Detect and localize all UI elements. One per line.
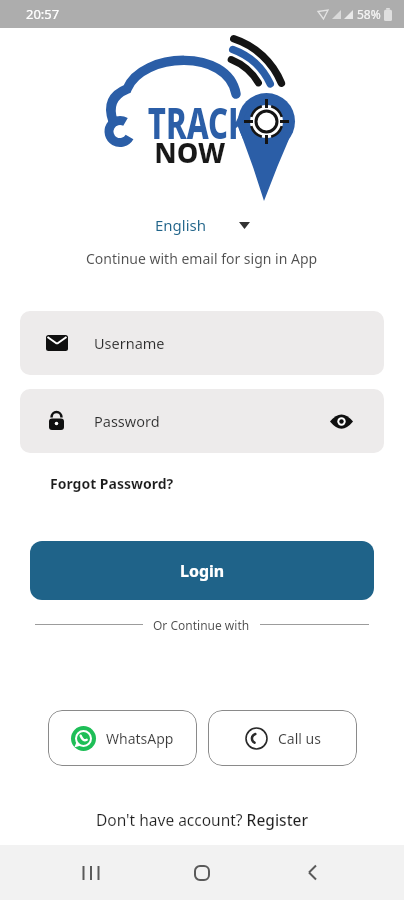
staticText: Call us [278, 729, 321, 748]
button[interactable]: Don't have account? Register [96, 809, 309, 830]
staticText: Password [94, 411, 160, 431]
button[interactable] [257, 845, 368, 900]
staticText: 20:57 [26, 5, 60, 23]
button[interactable] [146, 845, 257, 900]
button[interactable]: Password [20, 389, 384, 453]
staticText: Continue with email for sign in App [86, 249, 318, 268]
staticText: Or Continue with [153, 617, 250, 631]
button[interactable]: Forgot Password? [50, 474, 174, 493]
button[interactable]: Login [30, 541, 374, 600]
button[interactable]: Username [20, 311, 384, 375]
staticText: WhatsApp [106, 729, 174, 748]
staticText: NOW [154, 132, 226, 171]
staticText: English [155, 215, 207, 235]
staticText: TRACK [148, 94, 249, 151]
button[interactable] [36, 845, 146, 900]
button[interactable] [321, 401, 361, 441]
button[interactable]: English [155, 213, 250, 237]
staticText: Login [180, 560, 225, 582]
button[interactable]: Call us [208, 710, 357, 766]
staticText: Username [94, 333, 165, 353]
button[interactable]: WhatsApp [48, 710, 197, 766]
staticText: 58% [357, 6, 381, 22]
